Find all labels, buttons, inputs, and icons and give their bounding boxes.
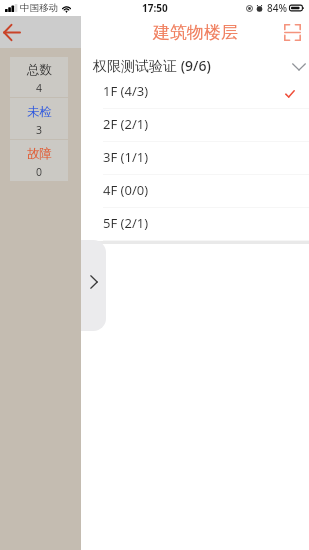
staticText: 建筑物楼层: [153, 22, 238, 43]
staticText: 5F (2/1): [103, 214, 149, 232]
button[interactable]: 权限测试验证 (9/6): [81, 48, 309, 76]
button[interactable]: 2F (2/1): [81, 109, 309, 142]
staticText: 0: [36, 165, 43, 179]
button[interactable]: 1F (4/3): [81, 76, 309, 109]
staticText: 3: [36, 123, 43, 137]
button[interactable]: 3F (1/1): [81, 142, 309, 175]
staticText: 故障: [27, 146, 52, 162]
button[interactable]: 总数: [10, 57, 68, 97]
staticText: 权限测试验证 (9/6): [93, 56, 211, 75]
button[interactable]: Scan: [276, 16, 308, 48]
staticText: 1F (4/3): [103, 82, 149, 100]
button[interactable]: 4F (0/0): [81, 175, 309, 208]
staticText: 17:50: [142, 1, 168, 15]
staticText: 3F (1/1): [103, 148, 149, 166]
button[interactable]: 未检: [10, 98, 68, 139]
staticText: 84%: [267, 1, 287, 15]
staticText: 中国移动: [20, 2, 58, 14]
button[interactable]: Back: [0, 16, 81, 48]
staticText: 未检: [27, 104, 52, 120]
staticText: 2F (2/1): [103, 115, 149, 133]
staticText: 总数: [27, 62, 52, 78]
button[interactable]: 5F (2/1): [81, 208, 309, 241]
button[interactable]: 故障: [10, 140, 68, 181]
button[interactable]: Expand panel: [81, 240, 106, 331]
staticText: 4: [36, 81, 43, 95]
staticText: 4F (0/0): [103, 181, 149, 199]
